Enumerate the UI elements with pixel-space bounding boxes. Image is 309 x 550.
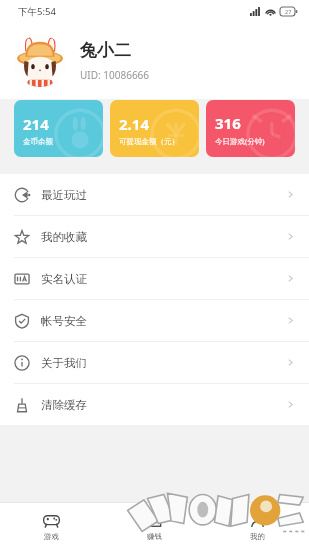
staticText: 我的收藏 <box>41 230 87 244</box>
button[interactable]: 游戏 <box>0 503 103 550</box>
button[interactable]: 316 <box>206 100 295 157</box>
staticText: 关于我们 <box>41 356 87 370</box>
staticText: 清除缓存 <box>41 398 87 412</box>
staticText: 赚钱 <box>147 532 162 541</box>
staticText: 实名认证 <box>41 272 87 286</box>
staticText: 今日游戏(分钟) <box>215 136 265 146</box>
staticText: 帐号安全 <box>41 314 87 328</box>
staticText: 316 <box>215 113 241 133</box>
button[interactable]: 214 <box>14 100 103 157</box>
staticText: UID: 10086666 <box>80 68 150 82</box>
staticText: 27 <box>285 8 292 15</box>
button[interactable]: 我的收藏 <box>0 216 309 257</box>
button[interactable]: 赚钱 <box>103 503 206 550</box>
staticText: 下午5:54 <box>18 5 56 18</box>
staticText: 最近玩过 <box>41 188 87 202</box>
staticText: 金币余额 <box>23 137 53 146</box>
staticText: 2.14 <box>119 114 149 134</box>
button[interactable]: 实名认证 <box>0 258 309 299</box>
staticText: 兔小二 <box>80 40 131 61</box>
staticText: 214 <box>23 114 49 134</box>
button[interactable]: 2.14 <box>110 100 199 157</box>
button[interactable]: 关于我们 <box>0 342 309 383</box>
staticText: 我的 <box>250 532 265 541</box>
button[interactable]: 我的 <box>206 503 309 550</box>
staticText: 游戏 <box>44 532 59 541</box>
button[interactable]: 最近玩过 <box>0 174 309 215</box>
button[interactable]: 清除缓存 <box>0 384 309 425</box>
button[interactable]: 帐号安全 <box>0 300 309 341</box>
button[interactable]: 兔小二 <box>0 22 309 99</box>
staticText: 可提现金额（元） <box>119 137 179 146</box>
